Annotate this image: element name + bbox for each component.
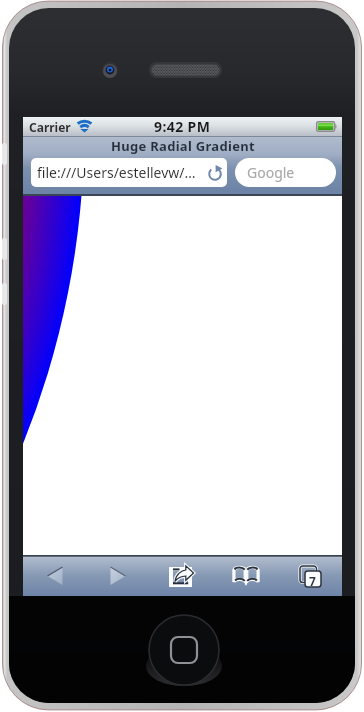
button[interactable]: Reload [207, 164, 223, 182]
staticText: Google [247, 163, 295, 182]
button[interactable]: Forward [86, 555, 150, 596]
button[interactable]: Share [150, 555, 214, 596]
button[interactable]: file:///Users/estellevw/… [31, 158, 227, 187]
staticText: 7 [309, 573, 316, 589]
button[interactable]: Bookmarks [214, 555, 278, 596]
staticText: Huge Radial Gradient [111, 137, 255, 155]
button[interactable]: Google [235, 158, 336, 187]
button[interactable]: Back [23, 555, 86, 596]
staticText: 9:42 PM [154, 117, 211, 136]
button[interactable]: Tabs [278, 555, 342, 596]
staticText: Carrier [29, 119, 71, 135]
staticText: file:///Users/estellevw/… [37, 163, 196, 182]
